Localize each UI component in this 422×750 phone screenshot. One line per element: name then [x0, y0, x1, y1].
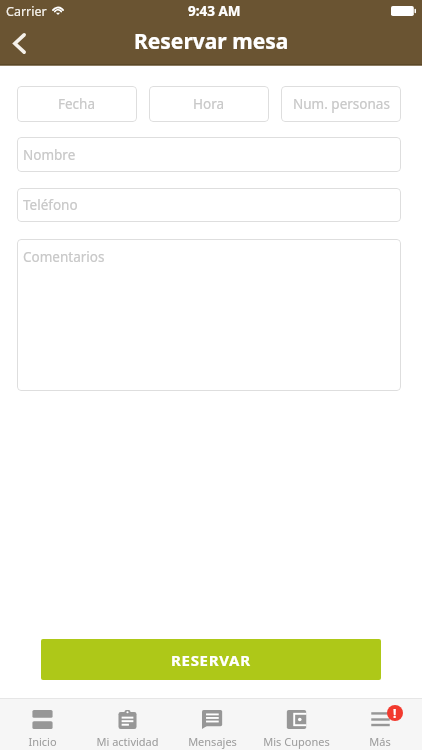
- button[interactable]: Teléfono: [17, 188, 401, 222]
- button[interactable]: Mensajes: [170, 699, 254, 750]
- staticText: Num. personas: [293, 95, 390, 113]
- staticText: Inicio: [28, 734, 57, 749]
- button[interactable]: Num. personas: [281, 86, 401, 122]
- staticText: 9:43 AM: [188, 2, 241, 20]
- button[interactable]: Mis Cupones: [254, 699, 338, 750]
- staticText: Mi actividad: [96, 734, 159, 749]
- staticText: Nombre: [23, 146, 76, 164]
- staticText: Fecha: [58, 95, 96, 113]
- staticText: Reservar mesa: [134, 27, 289, 56]
- staticText: Carrier: [6, 3, 47, 20]
- staticText: !: [393, 705, 397, 721]
- button[interactable]: Fecha: [17, 86, 137, 122]
- button[interactable]: Comentarios: [17, 239, 401, 391]
- button[interactable]: Mi actividad: [85, 699, 170, 750]
- staticText: Mensajes: [188, 734, 237, 749]
- staticText: Hora: [193, 95, 225, 113]
- button[interactable]: Hora: [149, 86, 269, 122]
- staticText: RESERVAR: [171, 650, 251, 670]
- staticText: Teléfono: [23, 196, 78, 214]
- button[interactable]: Inicio: [0, 699, 85, 750]
- staticText: Más: [369, 734, 391, 749]
- button[interactable]: RESERVAR: [41, 639, 381, 680]
- button[interactable]: !: [338, 699, 422, 750]
- staticText: Comentarios: [23, 248, 105, 266]
- button[interactable]: Back: [0, 22, 44, 66]
- button[interactable]: Nombre: [17, 137, 401, 172]
- staticText: Mis Cupones: [263, 734, 330, 749]
